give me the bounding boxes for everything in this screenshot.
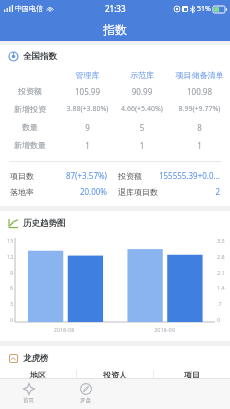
staticText: .7 bbox=[217, 300, 222, 307]
staticText: 0 bbox=[217, 316, 221, 323]
staticText: 8.99(+9.77%) bbox=[169, 104, 230, 114]
button[interactable]: 投资人 bbox=[77, 370, 153, 378]
staticText: 新增数量 bbox=[0, 140, 60, 150]
staticText: 投资额 bbox=[0, 86, 60, 96]
staticText: 新增投资 bbox=[0, 104, 60, 114]
staticText: 3.5 bbox=[217, 237, 225, 244]
staticText: 155555.39+0.0... bbox=[145, 170, 220, 181]
staticText: 8 bbox=[169, 122, 230, 133]
staticText: 历史趋势图 bbox=[23, 218, 66, 229]
staticText: 21:33 bbox=[105, 3, 126, 14]
staticText: 项目数 bbox=[10, 171, 34, 181]
staticText: 5 bbox=[115, 122, 169, 133]
staticText: 投资额 bbox=[118, 171, 142, 181]
staticText: 指数 bbox=[103, 22, 127, 37]
staticText: 9 bbox=[10, 269, 14, 276]
staticText: 0 bbox=[10, 316, 14, 323]
button[interactable]: Tab bbox=[172, 378, 230, 409]
staticText: 12 bbox=[7, 253, 14, 260]
staticText: 2018-09 bbox=[114, 326, 215, 333]
staticText: 地区 bbox=[30, 370, 46, 378]
button[interactable]: Tab bbox=[114, 378, 172, 409]
staticText: 105.99 bbox=[60, 86, 115, 97]
staticText: 2 bbox=[161, 186, 220, 197]
staticText: 2.1 bbox=[217, 269, 225, 276]
staticText: 100.98 bbox=[169, 86, 230, 97]
staticText: 15 bbox=[7, 237, 14, 244]
button[interactable]: 首页 bbox=[0, 378, 57, 409]
staticText: 51% bbox=[197, 4, 211, 14]
staticText: 项目储备清单 bbox=[169, 70, 230, 80]
staticText: 首页 bbox=[23, 397, 34, 404]
button[interactable]: 地区 bbox=[0, 370, 76, 378]
button[interactable]: 罗盘 bbox=[57, 378, 114, 409]
staticText: 4.66(+5.40%) bbox=[115, 104, 169, 114]
staticText: 龙虎榜 bbox=[23, 353, 49, 364]
staticText: 退库项目数 bbox=[118, 187, 158, 197]
staticText: 全国指数 bbox=[23, 51, 57, 62]
staticText: 项目 bbox=[184, 370, 200, 378]
staticText: 1 bbox=[169, 140, 230, 151]
staticText: 1 bbox=[115, 140, 169, 151]
staticText: 落地率 bbox=[10, 187, 34, 197]
staticText: 数量 bbox=[0, 122, 60, 132]
staticText: 87(+3.57%) bbox=[34, 170, 107, 181]
staticText: 罗盘 bbox=[80, 397, 91, 404]
staticText: 示范库 bbox=[115, 70, 169, 80]
staticText: 3 bbox=[10, 300, 14, 307]
staticText: 1 bbox=[60, 140, 115, 151]
staticText: 投资人 bbox=[103, 370, 127, 378]
staticText: 6 bbox=[10, 284, 14, 291]
staticText: 2.8 bbox=[217, 253, 225, 260]
staticText: 中国电信 bbox=[15, 4, 43, 13]
button[interactable]: 项目 bbox=[154, 370, 230, 378]
staticText: 9 bbox=[60, 122, 115, 133]
staticText: 20.00% bbox=[34, 186, 107, 197]
staticText: 管理库 bbox=[60, 70, 115, 80]
staticText: 90.99 bbox=[115, 86, 169, 97]
staticText: 1.4 bbox=[217, 284, 225, 291]
staticText: 3.88(+3.80%) bbox=[60, 104, 115, 114]
staticText: 2018-08 bbox=[14, 326, 114, 333]
